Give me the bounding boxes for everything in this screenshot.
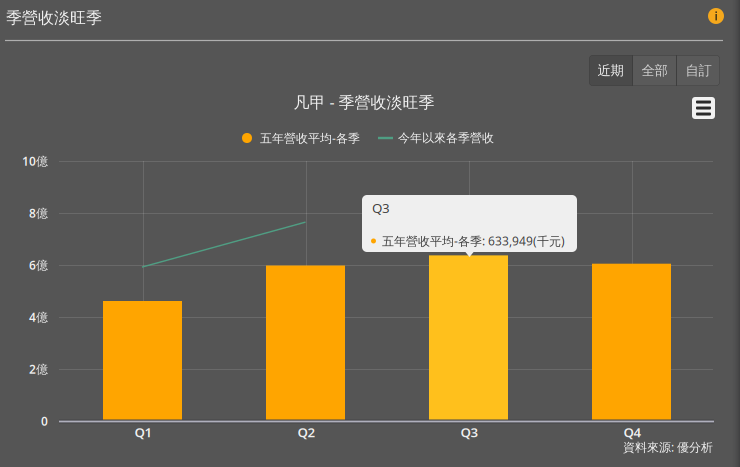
staticText: 自訂 <box>685 62 711 79</box>
staticText: Q3 <box>460 423 478 441</box>
button[interactable]: 全部 <box>633 55 676 86</box>
staticText: Q3 <box>372 199 390 217</box>
staticText: 五年營收平均-各季: 633,949(千元) <box>382 233 565 249</box>
staticText: 2億 <box>29 361 48 377</box>
staticText: 0 <box>41 413 48 429</box>
staticText: Q1 <box>134 423 152 441</box>
staticText: 近期 <box>597 62 623 79</box>
staticText: 今年以來各季營收 <box>398 131 494 145</box>
staticText: 資料來源: 優分析 <box>623 439 713 455</box>
staticText: 4億 <box>29 309 48 325</box>
button[interactable]: Chart menu <box>692 97 715 119</box>
staticText: 全部 <box>641 62 667 79</box>
button[interactable]: Info <box>708 8 724 24</box>
staticText: 凡甲 - 季營收淡旺季 <box>293 91 434 113</box>
staticText: 8億 <box>29 205 48 221</box>
staticText: 10億 <box>22 153 48 169</box>
button[interactable]: 近期 <box>589 55 632 86</box>
staticText: Q2 <box>297 423 315 441</box>
staticText: 季營收淡旺季 <box>6 8 102 28</box>
button[interactable]: 自訂 <box>677 55 720 86</box>
staticText: Q4 <box>623 423 641 441</box>
staticText: 6億 <box>29 257 48 273</box>
staticText: 五年營收平均-各季 <box>260 130 360 146</box>
